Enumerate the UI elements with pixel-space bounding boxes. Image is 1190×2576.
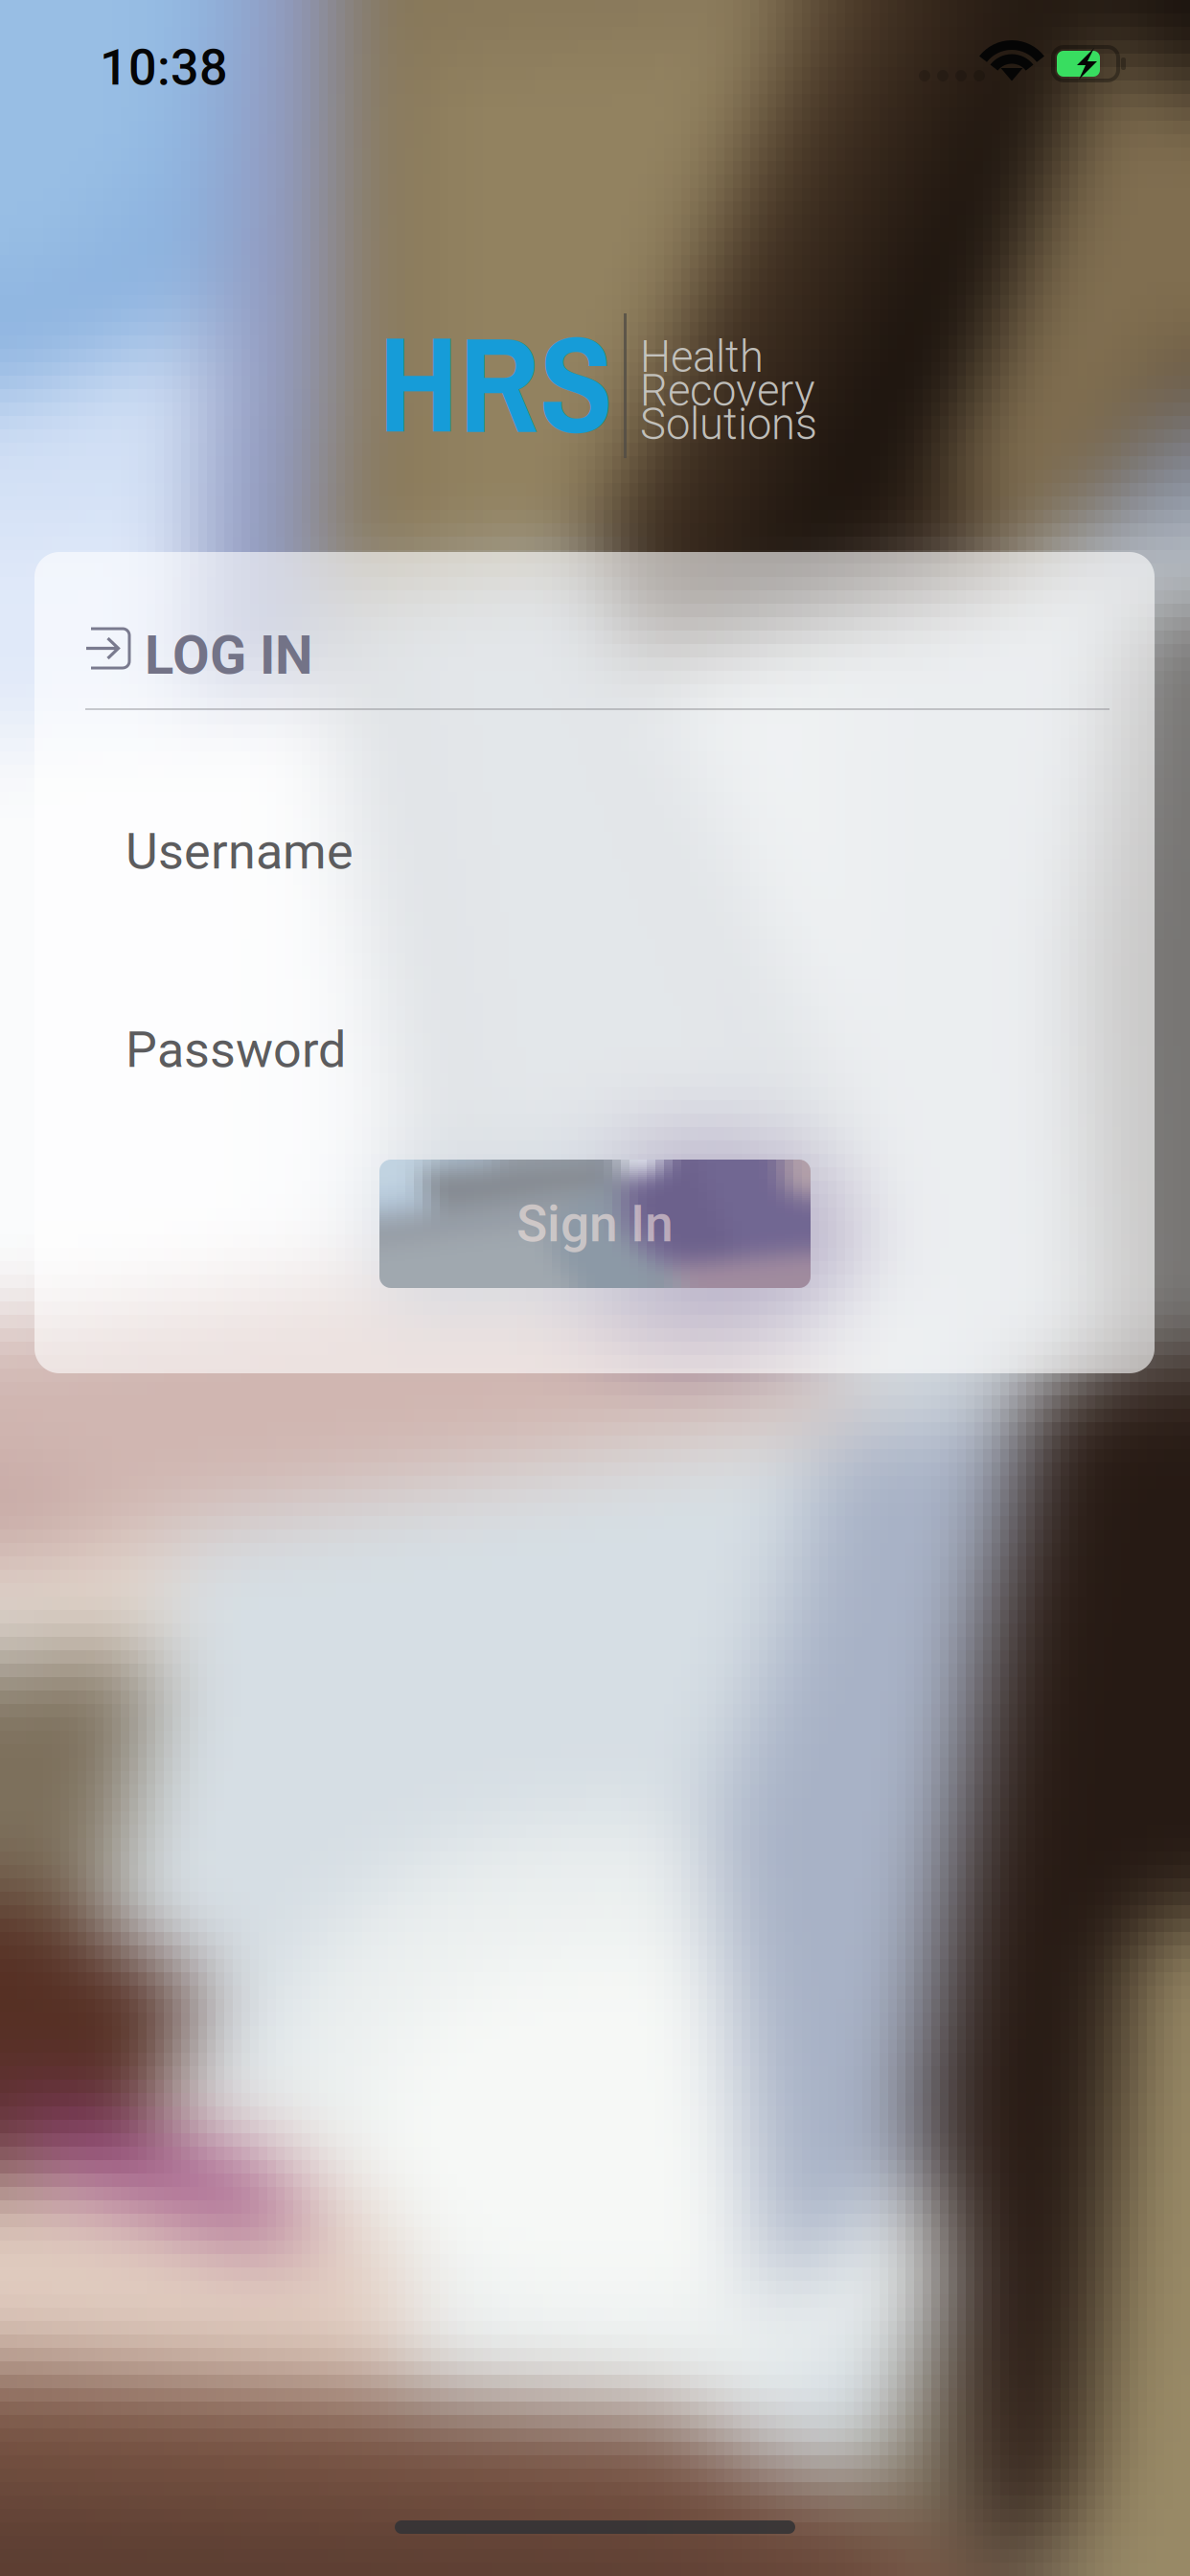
staticText: LOG IN xyxy=(145,624,313,687)
staticText: Recovery xyxy=(640,365,815,416)
staticText: 10:38 xyxy=(100,38,228,97)
button[interactable]: Sign In xyxy=(379,1160,811,1288)
staticText: Sign In xyxy=(516,1194,674,1254)
staticText: Password xyxy=(126,1021,346,1079)
staticText: HRS xyxy=(378,291,613,474)
staticText: Solutions xyxy=(640,399,817,450)
button[interactable]: Password xyxy=(34,958,1155,1126)
button[interactable]: Username xyxy=(34,757,1155,939)
staticText: Health xyxy=(640,332,764,382)
staticText: Username xyxy=(126,822,354,881)
